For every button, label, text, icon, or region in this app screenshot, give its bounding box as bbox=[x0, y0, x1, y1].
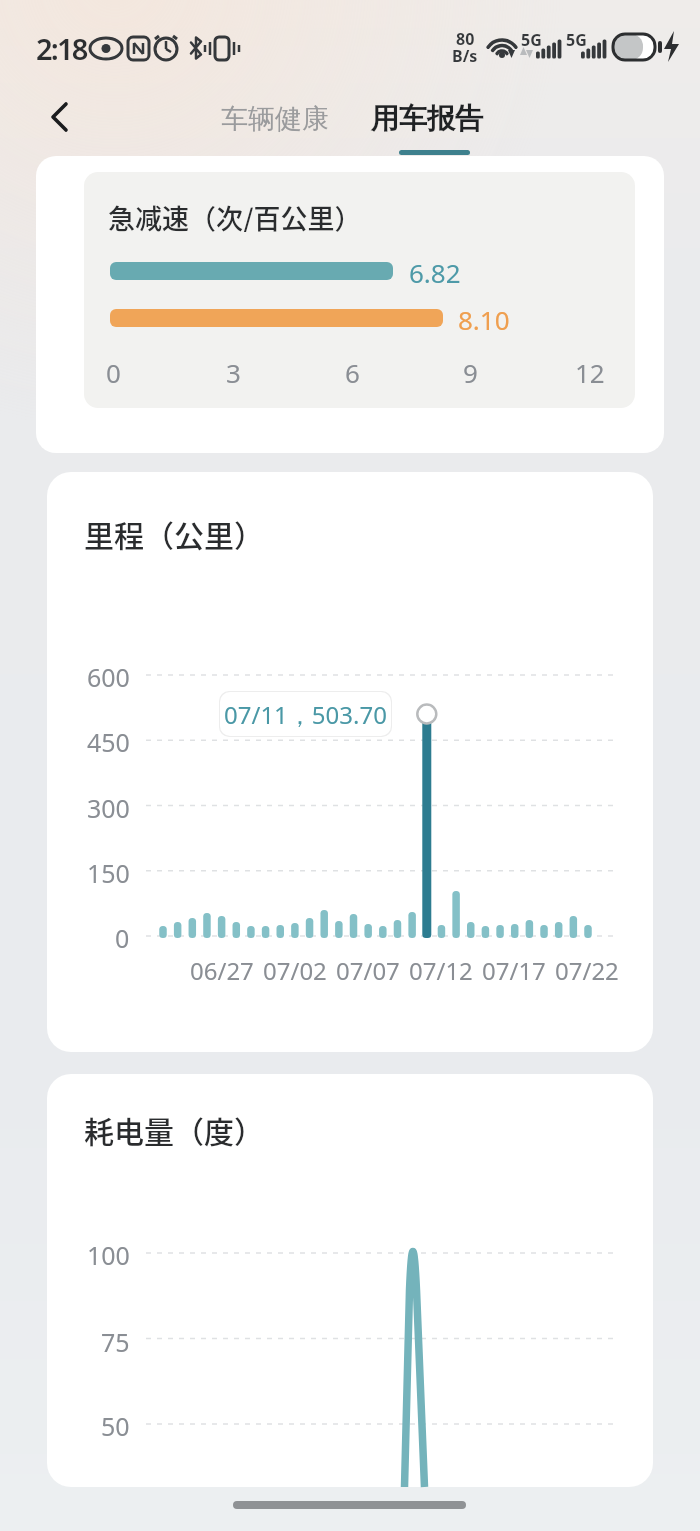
staticText: 450 bbox=[87, 725, 130, 755]
staticText: 耗电量（度） bbox=[84, 1108, 264, 1148]
staticText: 07/02 bbox=[263, 954, 327, 984]
staticText: 150 bbox=[87, 856, 130, 886]
staticText: 07/07 bbox=[336, 954, 400, 984]
button[interactable]: 车辆健康 bbox=[210, 98, 340, 140]
staticText: 8.10 bbox=[458, 302, 510, 334]
staticText: 07/11，503.70 bbox=[224, 698, 387, 731]
staticText: 9 bbox=[463, 355, 478, 385]
staticText: 07/22 bbox=[555, 954, 619, 984]
staticText: 56 bbox=[623, 34, 645, 60]
staticText: 3 bbox=[226, 355, 241, 385]
staticText: 300 bbox=[87, 791, 130, 821]
staticText: 6 bbox=[345, 355, 360, 385]
staticText: 0 bbox=[106, 355, 121, 385]
staticText: 07/17 bbox=[482, 954, 546, 984]
staticText: 5G bbox=[566, 29, 587, 49]
staticText: 75 bbox=[101, 1325, 130, 1355]
staticText: 车辆健康 bbox=[221, 102, 329, 136]
staticText: 0 bbox=[115, 921, 130, 951]
staticText: 12 bbox=[575, 355, 605, 385]
staticText: 里程（公里） bbox=[84, 512, 264, 552]
button[interactable]: 用车报告 bbox=[362, 97, 492, 139]
staticText: 06/27 bbox=[190, 954, 254, 984]
staticText: 2:18 bbox=[36, 29, 87, 68]
staticText: 50 bbox=[101, 1409, 130, 1439]
staticText: 6.82 bbox=[409, 255, 461, 287]
button[interactable] bbox=[220, 692, 391, 736]
staticText: B/s bbox=[452, 45, 478, 63]
staticText: 07/12 bbox=[409, 954, 473, 984]
staticText: 80 bbox=[456, 28, 475, 46]
staticText: 100 bbox=[87, 1238, 130, 1268]
staticText: 急减速（次/百公里） bbox=[108, 198, 362, 232]
staticText: 5G bbox=[521, 29, 542, 49]
staticText: 600 bbox=[87, 660, 130, 690]
staticText: 用车报告 bbox=[371, 101, 483, 136]
button[interactable] bbox=[40, 95, 85, 140]
